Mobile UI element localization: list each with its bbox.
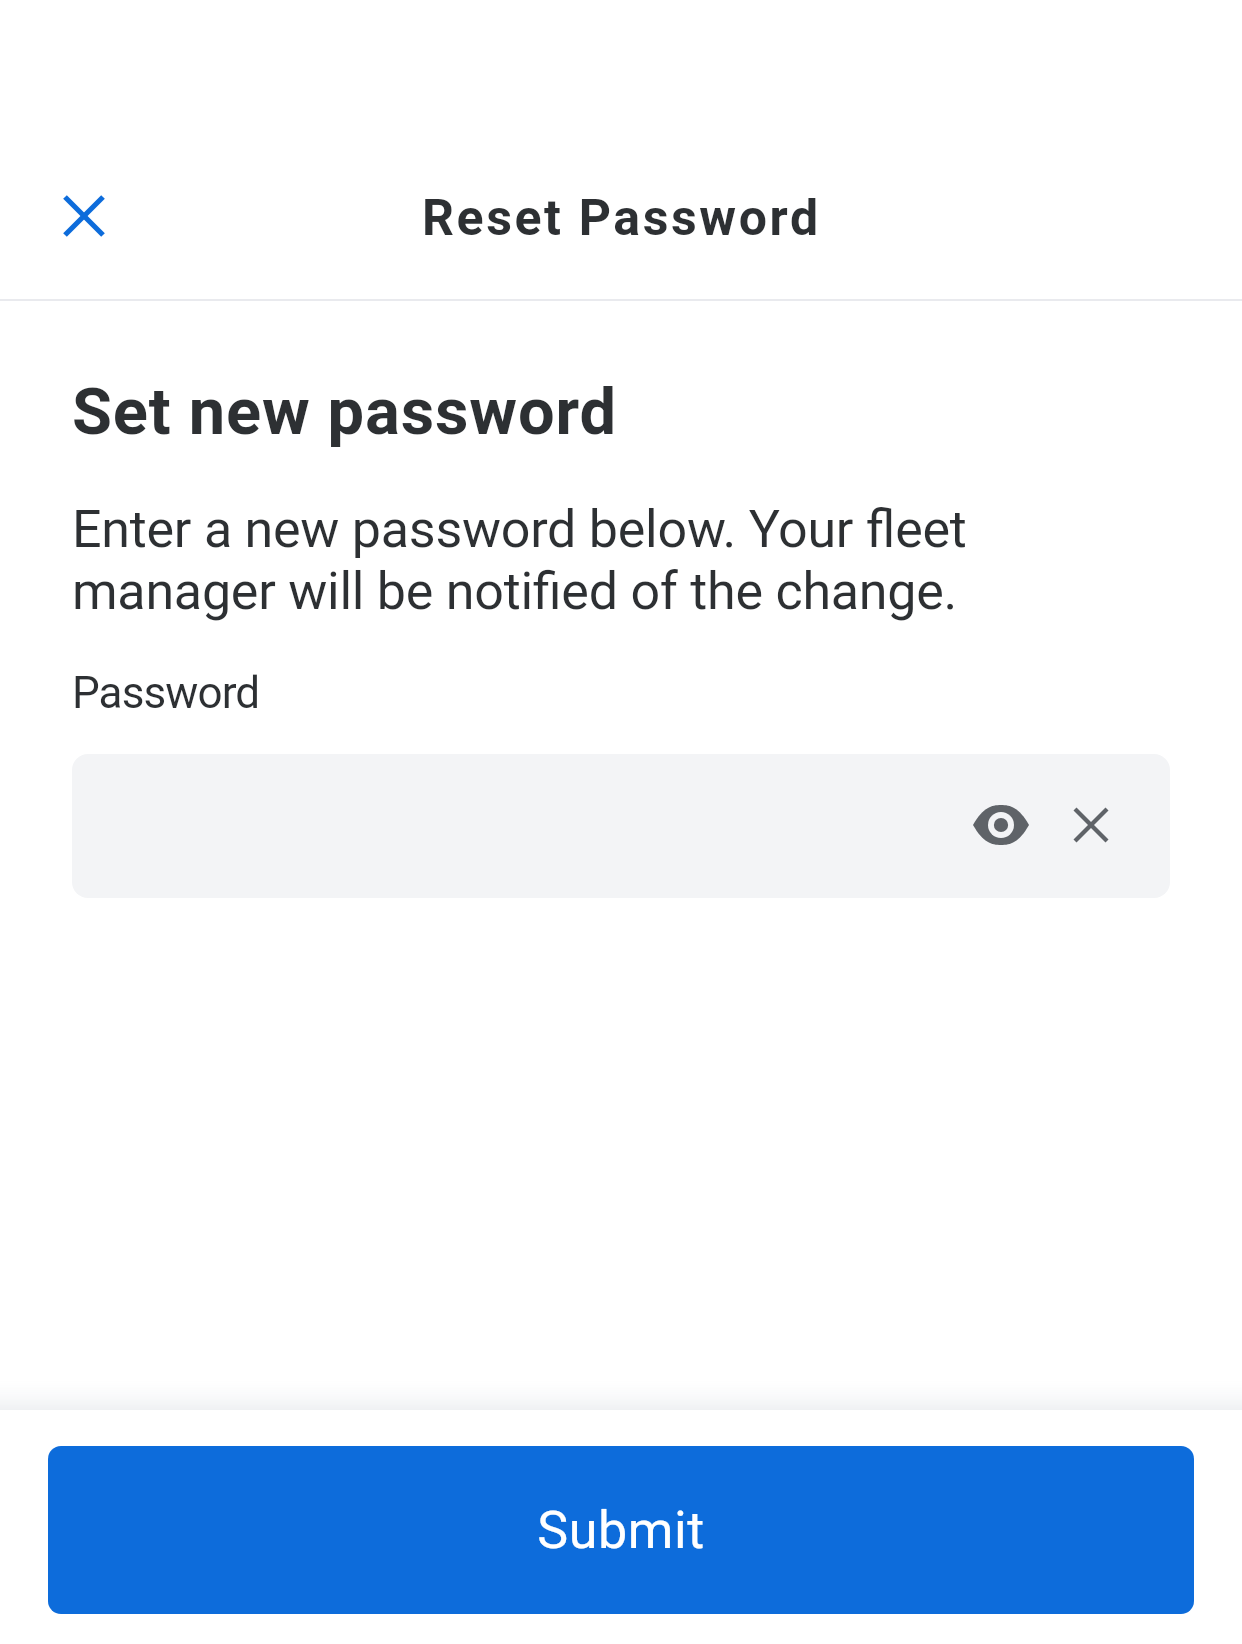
staticText: Set new password	[72, 374, 617, 450]
staticText: Password	[72, 667, 260, 719]
button[interactable]: Close	[42, 174, 126, 258]
button[interactable]: Show password	[961, 785, 1041, 865]
staticText: Submit	[537, 1500, 705, 1561]
button[interactable]: Submit	[48, 1446, 1194, 1614]
staticText: Enter a new password below. Your fleet m…	[72, 499, 1022, 621]
staticText: Reset Password	[422, 189, 821, 248]
button[interactable]: Clear password	[1051, 785, 1131, 865]
button[interactable]: Show password	[72, 754, 1170, 898]
